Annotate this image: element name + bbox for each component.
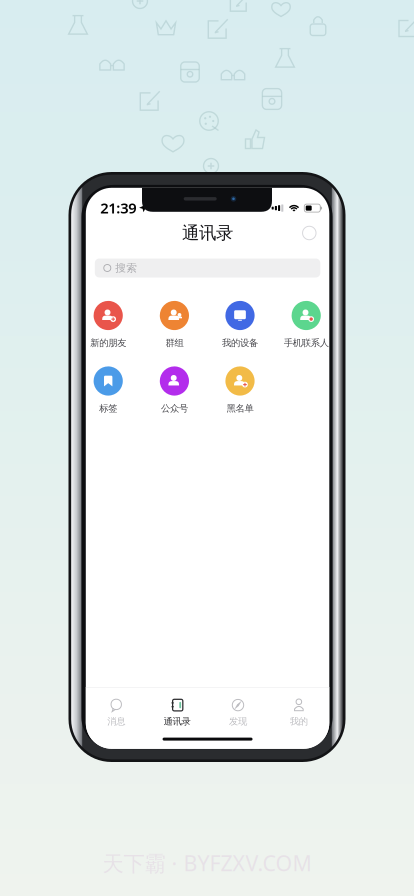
staticText: 黑名单 — [226, 403, 253, 414]
staticText: 通讯录 — [182, 222, 233, 244]
button[interactable]: 群组 — [143, 300, 205, 356]
staticText: 群组 — [165, 337, 183, 349]
staticText: 消息 — [107, 716, 125, 727]
button[interactable]: 标签 — [77, 366, 139, 422]
staticText: 我的设备 — [222, 337, 258, 349]
staticText: 通讯录 — [164, 716, 191, 727]
button[interactable]: 搜索 — [95, 258, 320, 277]
staticText: 搜索 — [115, 261, 137, 274]
staticText: 21:39 — [100, 198, 136, 217]
staticText: 公众号 — [161, 403, 188, 414]
button[interactable]: Add contact — [296, 220, 322, 246]
staticText: 天下霸 · BYFZXV.COM — [102, 849, 311, 877]
button[interactable]: 黑名单 — [209, 366, 271, 422]
button[interactable]: 我的 — [268, 688, 329, 732]
button[interactable]: 新的朋友 — [77, 300, 139, 356]
staticText: 手机联系人 — [284, 337, 329, 349]
staticText: 发现 — [229, 716, 247, 727]
button[interactable]: 发现 — [208, 688, 268, 732]
button[interactable]: 公众号 — [143, 366, 205, 422]
button[interactable]: 我的设备 — [209, 300, 271, 356]
staticText: 新的朋友 — [90, 337, 126, 349]
button[interactable]: 通讯录 — [147, 688, 208, 732]
button[interactable]: 手机联系人 — [275, 300, 337, 356]
button[interactable]: 消息 — [86, 688, 147, 732]
staticText: 我的 — [290, 716, 308, 727]
staticText: 标签 — [99, 403, 117, 414]
